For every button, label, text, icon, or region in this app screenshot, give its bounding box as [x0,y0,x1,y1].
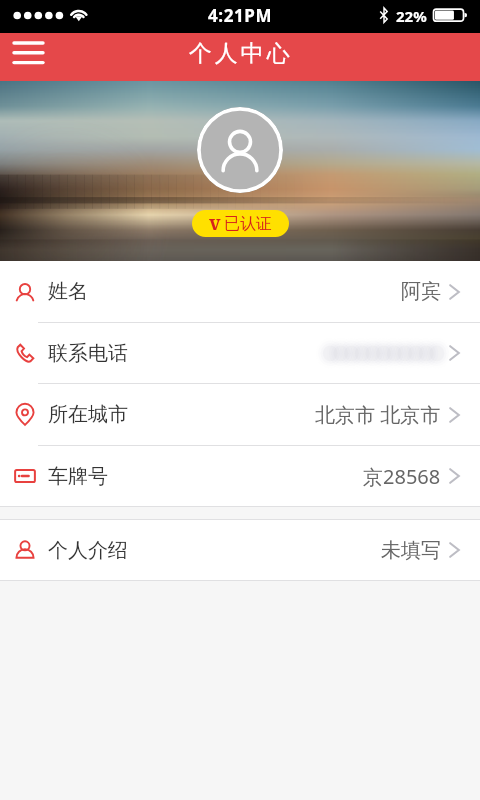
button[interactable]: v [192,210,289,237]
staticText: 车牌号 [48,464,108,489]
staticText: 阿宾 [401,279,441,304]
button[interactable]: Avatar [197,107,283,193]
button[interactable]: 所在城市 [0,384,480,445]
staticText: 未填写 [381,538,441,563]
button[interactable]: 个人介绍 [0,520,480,580]
staticText: 22% [396,6,427,26]
staticText: 北京市 北京市 [315,401,441,428]
staticText: 个人介绍 [48,538,128,563]
staticText: 联系电话 [48,341,128,366]
staticText: v [209,210,221,236]
staticText: 所在城市 [48,402,128,427]
button[interactable]: Menu [0,33,48,81]
staticText: 姓名 [48,279,88,304]
staticText: 已认证 [224,214,272,234]
staticText: 4:21PM [208,4,273,27]
staticText: 个人中心 [189,39,293,68]
button[interactable]: 车牌号 [0,446,480,506]
staticText: 京28568 [363,463,441,490]
button[interactable]: 姓名 [0,261,480,322]
button[interactable]: 联系电话 [0,323,480,383]
